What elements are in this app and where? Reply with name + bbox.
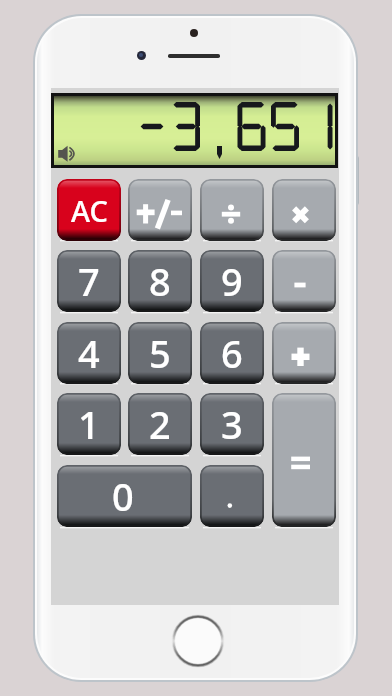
staticText: 1 — [78, 398, 100, 450]
staticText: 4 — [78, 327, 100, 379]
button[interactable]: Divide — [200, 179, 264, 241]
button[interactable]: Home — [171, 614, 225, 668]
button[interactable]: Plus — [272, 322, 336, 384]
button[interactable]: 7 — [57, 250, 121, 312]
button[interactable]: Minus — [272, 250, 336, 312]
button[interactable]: Decimal point — [200, 465, 264, 527]
button[interactable]: Multiply — [272, 179, 336, 241]
staticText: 3 — [221, 398, 243, 450]
button[interactable]: AC — [57, 179, 121, 241]
staticText: 2 — [149, 398, 171, 450]
button[interactable]: 2 — [128, 393, 192, 455]
button[interactable]: 5 — [128, 322, 192, 384]
button[interactable]: 3 — [200, 393, 264, 455]
staticText: 5 — [149, 327, 171, 379]
button[interactable]: 4 — [57, 322, 121, 384]
staticText: 8 — [149, 255, 171, 307]
staticText: 6 — [221, 327, 243, 379]
staticText: 9 — [221, 255, 243, 307]
staticText: 7 — [78, 255, 100, 307]
button[interactable]: 1 — [57, 393, 121, 455]
button[interactable]: 9 — [200, 250, 264, 312]
button[interactable]: +/- — [128, 179, 192, 241]
button[interactable]: 8 — [128, 250, 192, 312]
button[interactable]: 0 — [57, 465, 192, 527]
button[interactable]: Equals — [272, 393, 336, 527]
button[interactable]: 6 — [200, 322, 264, 384]
staticText: AC — [71, 191, 108, 230]
staticText: 0 — [112, 470, 134, 522]
